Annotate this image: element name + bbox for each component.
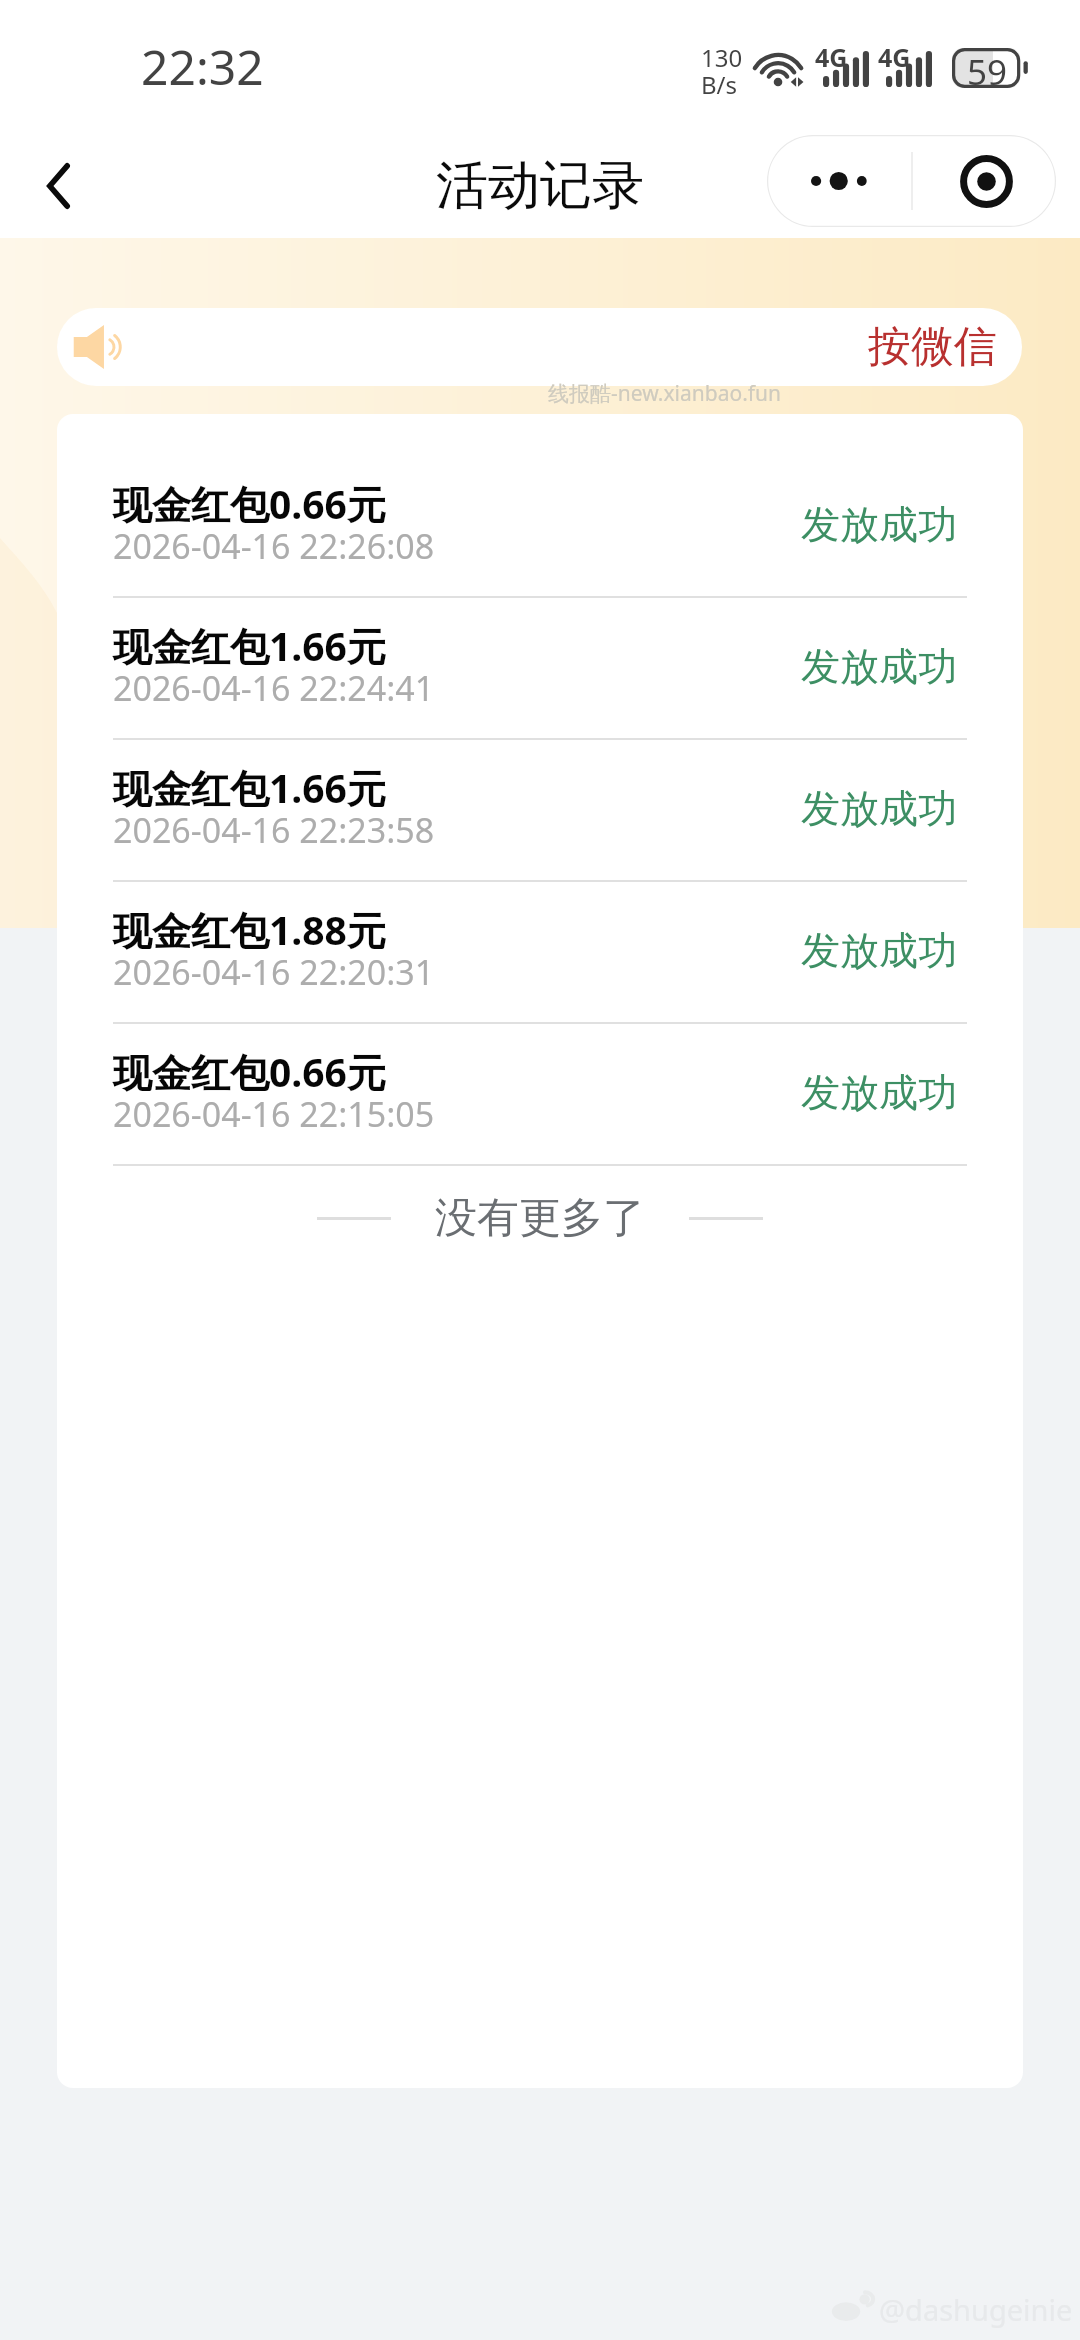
- staticText: 59: [967, 48, 1008, 88]
- staticText: 2026-04-16 22:23:58: [113, 807, 435, 853]
- staticText: 现金红包1.66元: [113, 761, 386, 814]
- staticText: 2026-04-16 22:24:41: [113, 665, 435, 711]
- staticText: 发放成功: [801, 926, 957, 975]
- button[interactable]: 现金红包0.66元: [57, 1024, 1023, 1164]
- staticText: 2026-04-16 22:26:08: [113, 523, 435, 569]
- button[interactable]: 现金红包1.88元: [57, 882, 1023, 1022]
- staticText: 2026-04-16 22:15:05: [113, 1091, 435, 1137]
- staticText: B/s: [701, 68, 738, 101]
- button[interactable]: More options: [767, 135, 911, 227]
- button[interactable]: Close mini program: [913, 135, 1056, 227]
- staticText: 4G: [878, 40, 911, 74]
- staticText: 发放成功: [801, 1068, 957, 1117]
- staticText: 现金红包1.88元: [113, 903, 386, 956]
- staticText: 现金红包0.66元: [113, 1045, 386, 1098]
- staticText: 没有更多了: [435, 1192, 645, 1245]
- staticText: 2026-04-16 22:20:31: [113, 949, 435, 995]
- button[interactable]: 现金红包1.66元: [57, 740, 1023, 880]
- staticText: 22:32: [141, 34, 264, 99]
- staticText: 现金红包1.66元: [113, 619, 386, 672]
- button[interactable]: Back: [3, 131, 113, 241]
- staticText: 活动记录: [436, 153, 644, 219]
- button[interactable]: 现金红包1.66元: [57, 598, 1023, 738]
- staticText: 按微信: [868, 320, 997, 374]
- staticText: 现金红包0.66元: [113, 477, 386, 530]
- staticText: 线报酷-new.xianbao.fun: [548, 379, 781, 408]
- staticText: 发放成功: [801, 642, 957, 691]
- staticText: 发放成功: [801, 784, 957, 833]
- staticText: @dashugeinie: [879, 2290, 1073, 2329]
- button[interactable]: 现金红包0.66元: [57, 456, 1023, 596]
- button[interactable]: 按微信: [57, 308, 1022, 386]
- staticText: 发放成功: [801, 500, 957, 549]
- staticText: 4G: [815, 40, 848, 74]
- staticText: 130: [701, 41, 743, 74]
